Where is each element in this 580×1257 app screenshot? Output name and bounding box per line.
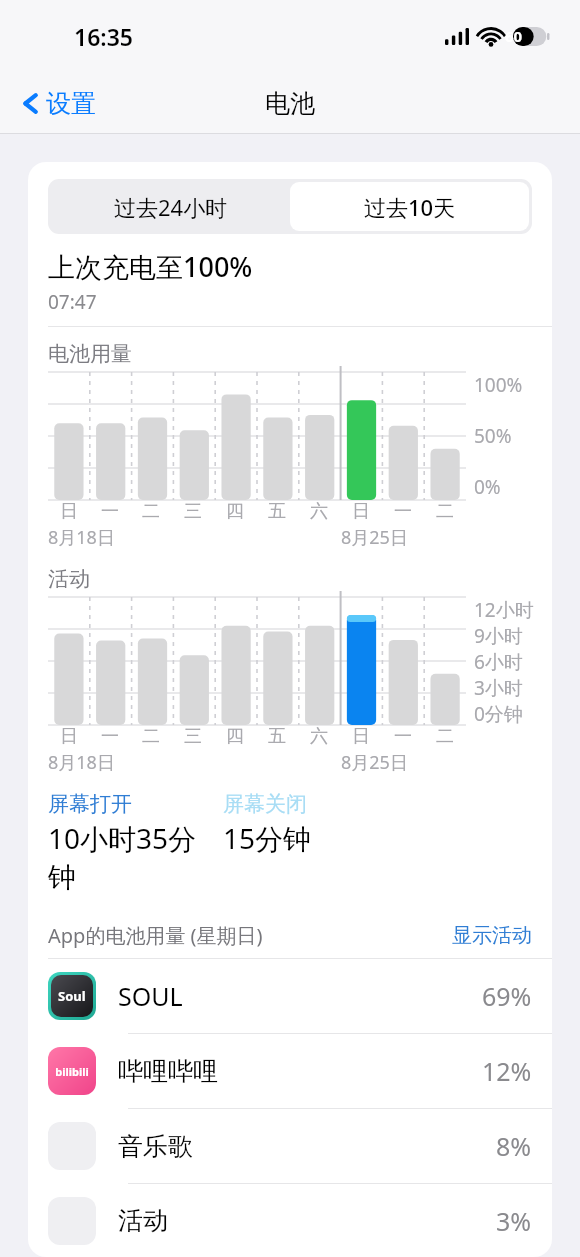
staticText: 活动 (48, 566, 90, 592)
button[interactable]: 设置 (14, 82, 104, 125)
staticText: 电池 (265, 88, 315, 119)
staticText: 07:47 (48, 289, 97, 315)
staticText: 6小时 (474, 649, 523, 675)
staticText: 屏幕打开 (48, 791, 132, 817)
staticText: 五 (268, 500, 286, 523)
staticText: 8月25日 (341, 525, 408, 550)
staticText: Soul (58, 987, 86, 1005)
staticText: 二 (142, 725, 160, 748)
staticText: 六 (310, 725, 328, 748)
staticText: 一 (101, 500, 119, 523)
staticText: SOUL (118, 979, 183, 1013)
staticText: 屏幕关闭 (223, 791, 307, 817)
staticText: 活动 (118, 1205, 168, 1236)
staticText: 二 (142, 500, 160, 523)
staticText: 显示活动 (452, 923, 532, 948)
staticText: 8月25日 (341, 750, 408, 775)
staticText: 50% (474, 423, 512, 449)
staticText: 日 (352, 725, 370, 748)
staticText: 8月18日 (48, 750, 115, 775)
button[interactable]: bilibili (28, 1034, 552, 1108)
staticText: 六 (310, 500, 328, 523)
staticText: 过去24小时 (114, 192, 228, 222)
staticText: 日 (352, 500, 370, 523)
staticText: bilibili (55, 1064, 89, 1079)
staticText: 60 (505, 26, 523, 46)
staticText: 音乐歌 (118, 1131, 193, 1162)
staticText: 哔哩哔哩 (118, 1056, 218, 1087)
staticText: 四 (226, 725, 244, 748)
staticText: 过去10天 (364, 192, 456, 222)
button[interactable]: 过去24小时 (51, 182, 290, 231)
staticText: 三 (184, 500, 202, 523)
staticText: 一 (394, 725, 412, 748)
staticText: 四 (226, 500, 244, 523)
staticText: 0分钟 (474, 701, 523, 725)
staticText: 设置 (46, 88, 96, 119)
staticText: 10小时35分钟 (48, 819, 223, 896)
button[interactable]: 过去10天 (290, 182, 529, 231)
staticText: App的电池用量 (星期日) (48, 922, 263, 949)
staticText: 16:35 (74, 21, 133, 52)
button[interactable]: 显示活动 (452, 923, 532, 948)
staticText: 69% (482, 979, 532, 1013)
staticText: 上次充电至100% (48, 248, 253, 285)
staticText: 8% (496, 1129, 532, 1163)
staticText: 3小时 (474, 675, 523, 701)
button[interactable]: Soul (28, 959, 552, 1033)
staticText: 100% (474, 372, 523, 398)
staticText: 9小时 (474, 623, 523, 649)
staticText: 3% (496, 1204, 532, 1238)
button[interactable]: 音乐歌 (28, 1109, 552, 1183)
staticText: 15分钟 (223, 819, 312, 857)
staticText: 一 (394, 500, 412, 523)
staticText: 五 (268, 725, 286, 748)
staticText: 二 (436, 725, 454, 748)
staticText: 三 (184, 725, 202, 748)
button[interactable]: 活动 (28, 1184, 552, 1257)
staticText: 一 (101, 725, 119, 748)
staticText: 电池用量 (48, 341, 132, 367)
staticText: 二 (436, 500, 454, 523)
staticText: 日 (60, 500, 78, 523)
staticText: 12小时 (474, 597, 534, 623)
staticText: 日 (60, 725, 78, 748)
staticText: 12% (482, 1054, 532, 1088)
staticText: 8月18日 (48, 525, 115, 550)
staticText: 0% (474, 474, 501, 500)
